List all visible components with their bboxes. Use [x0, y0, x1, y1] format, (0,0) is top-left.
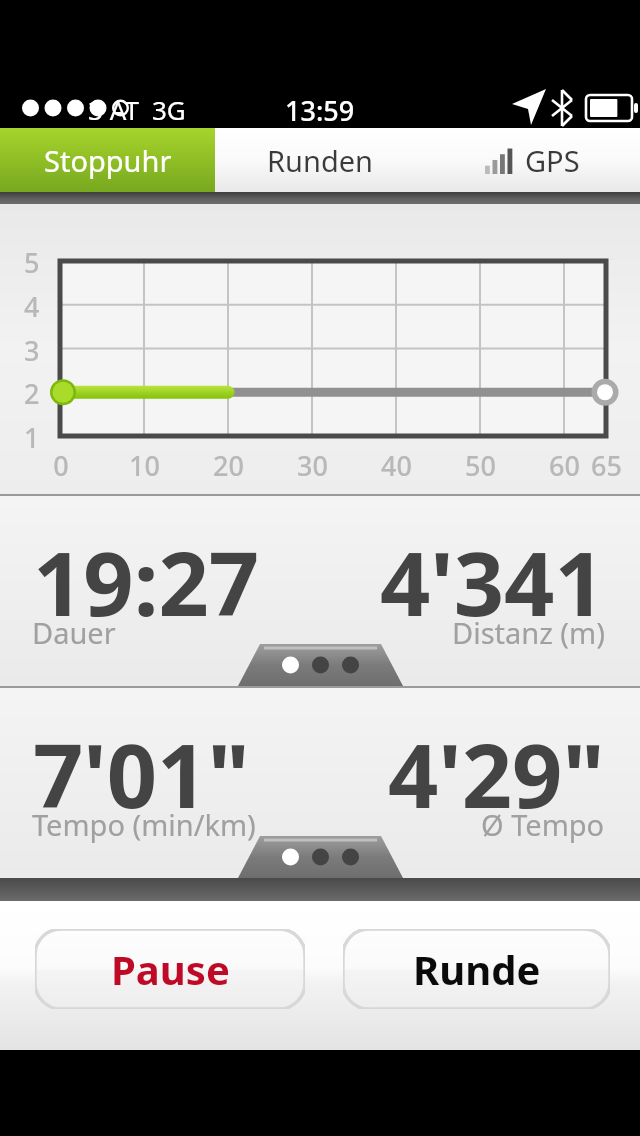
button[interactable]: Runden — [215, 128, 425, 192]
staticText: 7'01" — [33, 714, 250, 834]
staticText: GPS — [525, 141, 580, 180]
staticText: 3 AT — [88, 92, 139, 127]
staticText: 4'29" — [388, 714, 605, 834]
staticText: Ø Tempo — [481, 805, 605, 844]
staticText: 65 — [591, 447, 622, 484]
staticText: Stoppuhr — [44, 141, 172, 180]
staticText: Distanz (m) — [452, 613, 605, 652]
button[interactable]: 19:27 — [0, 496, 640, 686]
staticText: 1 — [24, 419, 40, 456]
staticText: 50 — [465, 447, 496, 484]
staticText: 3 — [24, 332, 40, 369]
button[interactable]: Pause — [35, 929, 305, 1009]
staticText: 20 — [213, 447, 244, 484]
staticText: 19:27 — [33, 522, 260, 642]
button[interactable]: Runde — [343, 929, 610, 1009]
button[interactable]: GPS — [425, 128, 640, 192]
button[interactable]: Drag handle — [238, 836, 403, 878]
staticText: 3G — [152, 92, 186, 127]
staticText: Runde — [413, 942, 541, 996]
staticText: Dauer — [32, 613, 116, 652]
staticText: 2 — [24, 375, 40, 412]
staticText: 5 — [24, 244, 40, 281]
staticText: 4'341 — [380, 522, 605, 642]
button[interactable]: 7'01" — [0, 688, 640, 878]
staticText: 30 — [297, 447, 328, 484]
staticText: Tempo (min/km) — [32, 805, 256, 844]
staticText: Runden — [267, 141, 373, 180]
staticText: Pause — [111, 942, 230, 996]
staticText: 4 — [24, 288, 40, 325]
staticText: 0 — [53, 447, 69, 484]
staticText: 10 — [129, 447, 160, 484]
button[interactable]: Stoppuhr — [0, 128, 215, 192]
staticText: 13:59 — [285, 92, 355, 129]
staticText: 40 — [381, 447, 412, 484]
staticText: 60 — [549, 447, 580, 484]
button[interactable]: Drag handle — [238, 644, 403, 686]
